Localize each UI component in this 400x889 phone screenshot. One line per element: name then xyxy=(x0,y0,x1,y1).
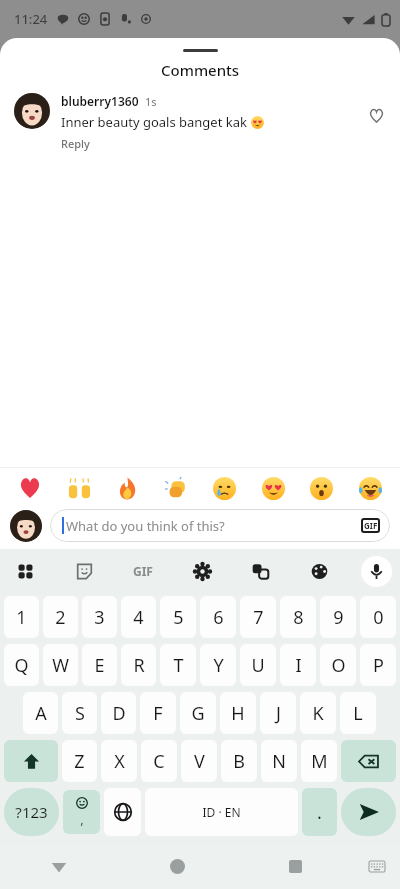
button[interactable]: 6 xyxy=(200,596,236,638)
button[interactable]: ?123 xyxy=(4,788,59,836)
button[interactable]: H xyxy=(220,692,256,734)
staticText: X xyxy=(114,749,125,774)
button[interactable]: P xyxy=(360,644,396,686)
staticText: Inner beauty goals banget kak xyxy=(61,113,251,131)
button[interactable]: Q xyxy=(4,644,39,686)
staticText: 8 xyxy=(293,605,304,630)
button[interactable]: 0 xyxy=(360,596,396,638)
button[interactable]: Voice input xyxy=(361,556,392,587)
button[interactable]: Quick reaction xyxy=(350,468,390,508)
button[interactable]: O xyxy=(320,644,356,686)
button[interactable]: Settings xyxy=(185,554,219,588)
button[interactable]: 1 xyxy=(4,596,39,638)
button[interactable]: ID · EN xyxy=(145,788,298,836)
staticText: 7 xyxy=(253,605,264,630)
staticText: U xyxy=(251,653,265,678)
staticText: F xyxy=(153,701,163,726)
button[interactable]: Apps xyxy=(8,554,42,588)
button[interactable]: Quick reaction xyxy=(204,468,244,508)
button[interactable]: Like comment xyxy=(362,101,390,129)
button[interactable]: W xyxy=(43,644,78,686)
button[interactable]: J xyxy=(260,692,296,734)
button[interactable]: 2 xyxy=(43,596,78,638)
button[interactable]: V xyxy=(181,740,217,782)
staticText: 1 xyxy=(16,605,27,630)
button[interactable]: A xyxy=(23,692,58,734)
button[interactable]: Shift xyxy=(4,740,58,782)
button[interactable]: U xyxy=(240,644,276,686)
button[interactable]: N xyxy=(261,740,297,782)
staticText: D xyxy=(112,701,126,726)
staticText: Z xyxy=(74,749,85,774)
button[interactable]: K xyxy=(300,692,336,734)
button[interactable]: L xyxy=(340,692,376,734)
button[interactable]: Z xyxy=(62,740,97,782)
staticText: S xyxy=(75,701,85,726)
button[interactable]: 4 xyxy=(121,596,156,638)
button[interactable]: X xyxy=(101,740,137,782)
staticText: O xyxy=(331,653,346,678)
staticText: T xyxy=(173,653,184,678)
button[interactable]: Emoji and comma xyxy=(63,790,100,834)
button[interactable]: Quick reaction xyxy=(253,468,293,508)
button[interactable]: GIF keyboard xyxy=(126,554,160,588)
button[interactable]: T xyxy=(160,644,196,686)
staticText: What do you think of this? xyxy=(66,517,361,535)
button[interactable]: Quick reaction xyxy=(301,468,341,508)
button[interactable]: Quick reaction xyxy=(59,468,99,508)
button[interactable]: 5 xyxy=(160,596,196,638)
staticText: H xyxy=(231,701,245,726)
button[interactable]: Stickers xyxy=(67,554,101,588)
button[interactable]: Recents xyxy=(236,844,354,889)
button[interactable]: S xyxy=(62,692,97,734)
staticText: 0 xyxy=(373,605,384,630)
button[interactable]: Y xyxy=(200,644,236,686)
button[interactable]: . xyxy=(302,788,337,836)
button[interactable]: R xyxy=(121,644,156,686)
button[interactable]: GIF xyxy=(361,518,380,533)
button[interactable]: C xyxy=(141,740,177,782)
button[interactable]: I xyxy=(280,644,316,686)
button[interactable]: Quick reaction xyxy=(107,468,147,508)
staticText: ID · EN xyxy=(202,804,241,820)
button[interactable]: Change language xyxy=(104,788,141,836)
button[interactable]: 3 xyxy=(82,596,117,638)
staticText: J xyxy=(276,701,281,726)
button[interactable]: Reply xyxy=(61,136,90,151)
button[interactable]: Quick reaction xyxy=(156,468,196,508)
staticText: bluberry1360 xyxy=(61,93,139,109)
button[interactable]: E xyxy=(82,644,117,686)
button[interactable]: B xyxy=(221,740,257,782)
button[interactable]: D xyxy=(101,692,136,734)
button[interactable]: G xyxy=(180,692,216,734)
button[interactable]: Home xyxy=(118,844,236,889)
button[interactable]: F xyxy=(140,692,176,734)
staticText: E xyxy=(94,653,105,678)
button[interactable]: What do you think of this? xyxy=(50,509,390,542)
button[interactable]: Send xyxy=(341,788,396,836)
button[interactable]: Backspace xyxy=(341,740,396,782)
button[interactable]: Quick reaction xyxy=(10,468,50,508)
staticText: 1s xyxy=(145,94,157,109)
staticText: W xyxy=(52,653,69,678)
button[interactable]: 7 xyxy=(240,596,276,638)
button[interactable]: Hide keyboard xyxy=(354,844,400,889)
button[interactable]: Back xyxy=(0,844,118,889)
staticText: G xyxy=(191,701,205,726)
button[interactable]: Themes xyxy=(302,554,336,588)
staticText: M xyxy=(311,749,328,774)
staticText: . xyxy=(317,800,322,825)
staticText: V xyxy=(194,749,205,774)
staticText: GIF xyxy=(133,563,153,579)
button[interactable]: 9 xyxy=(320,596,356,638)
staticText: Y xyxy=(213,653,224,678)
button[interactable]: Translate xyxy=(243,554,277,588)
staticText: , xyxy=(80,810,84,828)
button[interactable]: bluberry1360 xyxy=(0,93,400,151)
staticText: I xyxy=(295,653,302,678)
staticText: ?123 xyxy=(15,802,48,822)
staticText: 6 xyxy=(213,605,224,630)
staticText: R xyxy=(133,653,145,678)
button[interactable]: M xyxy=(301,740,337,782)
button[interactable]: 8 xyxy=(280,596,316,638)
